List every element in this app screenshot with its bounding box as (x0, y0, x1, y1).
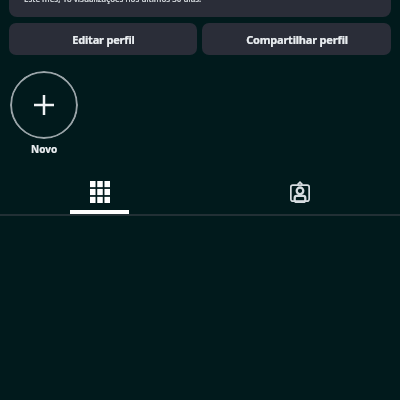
staticText: Novo (31, 142, 58, 156)
staticText: Editar perfil (72, 32, 135, 47)
staticText: Compartilhar perfil (246, 32, 348, 47)
button[interactable]: Editar perfil (9, 23, 197, 55)
button[interactable]: Novo destaque (10, 71, 78, 139)
button[interactable]: Publicações (0, 176, 200, 208)
button[interactable]: Marcados (200, 176, 400, 208)
button[interactable]: Este mês, 18 visualizações nos últimos 3… (9, 0, 391, 17)
button[interactable]: Compartilhar perfil (202, 23, 391, 55)
staticText: Este mês, 18 visualizações nos últimos 3… (24, 0, 202, 4)
